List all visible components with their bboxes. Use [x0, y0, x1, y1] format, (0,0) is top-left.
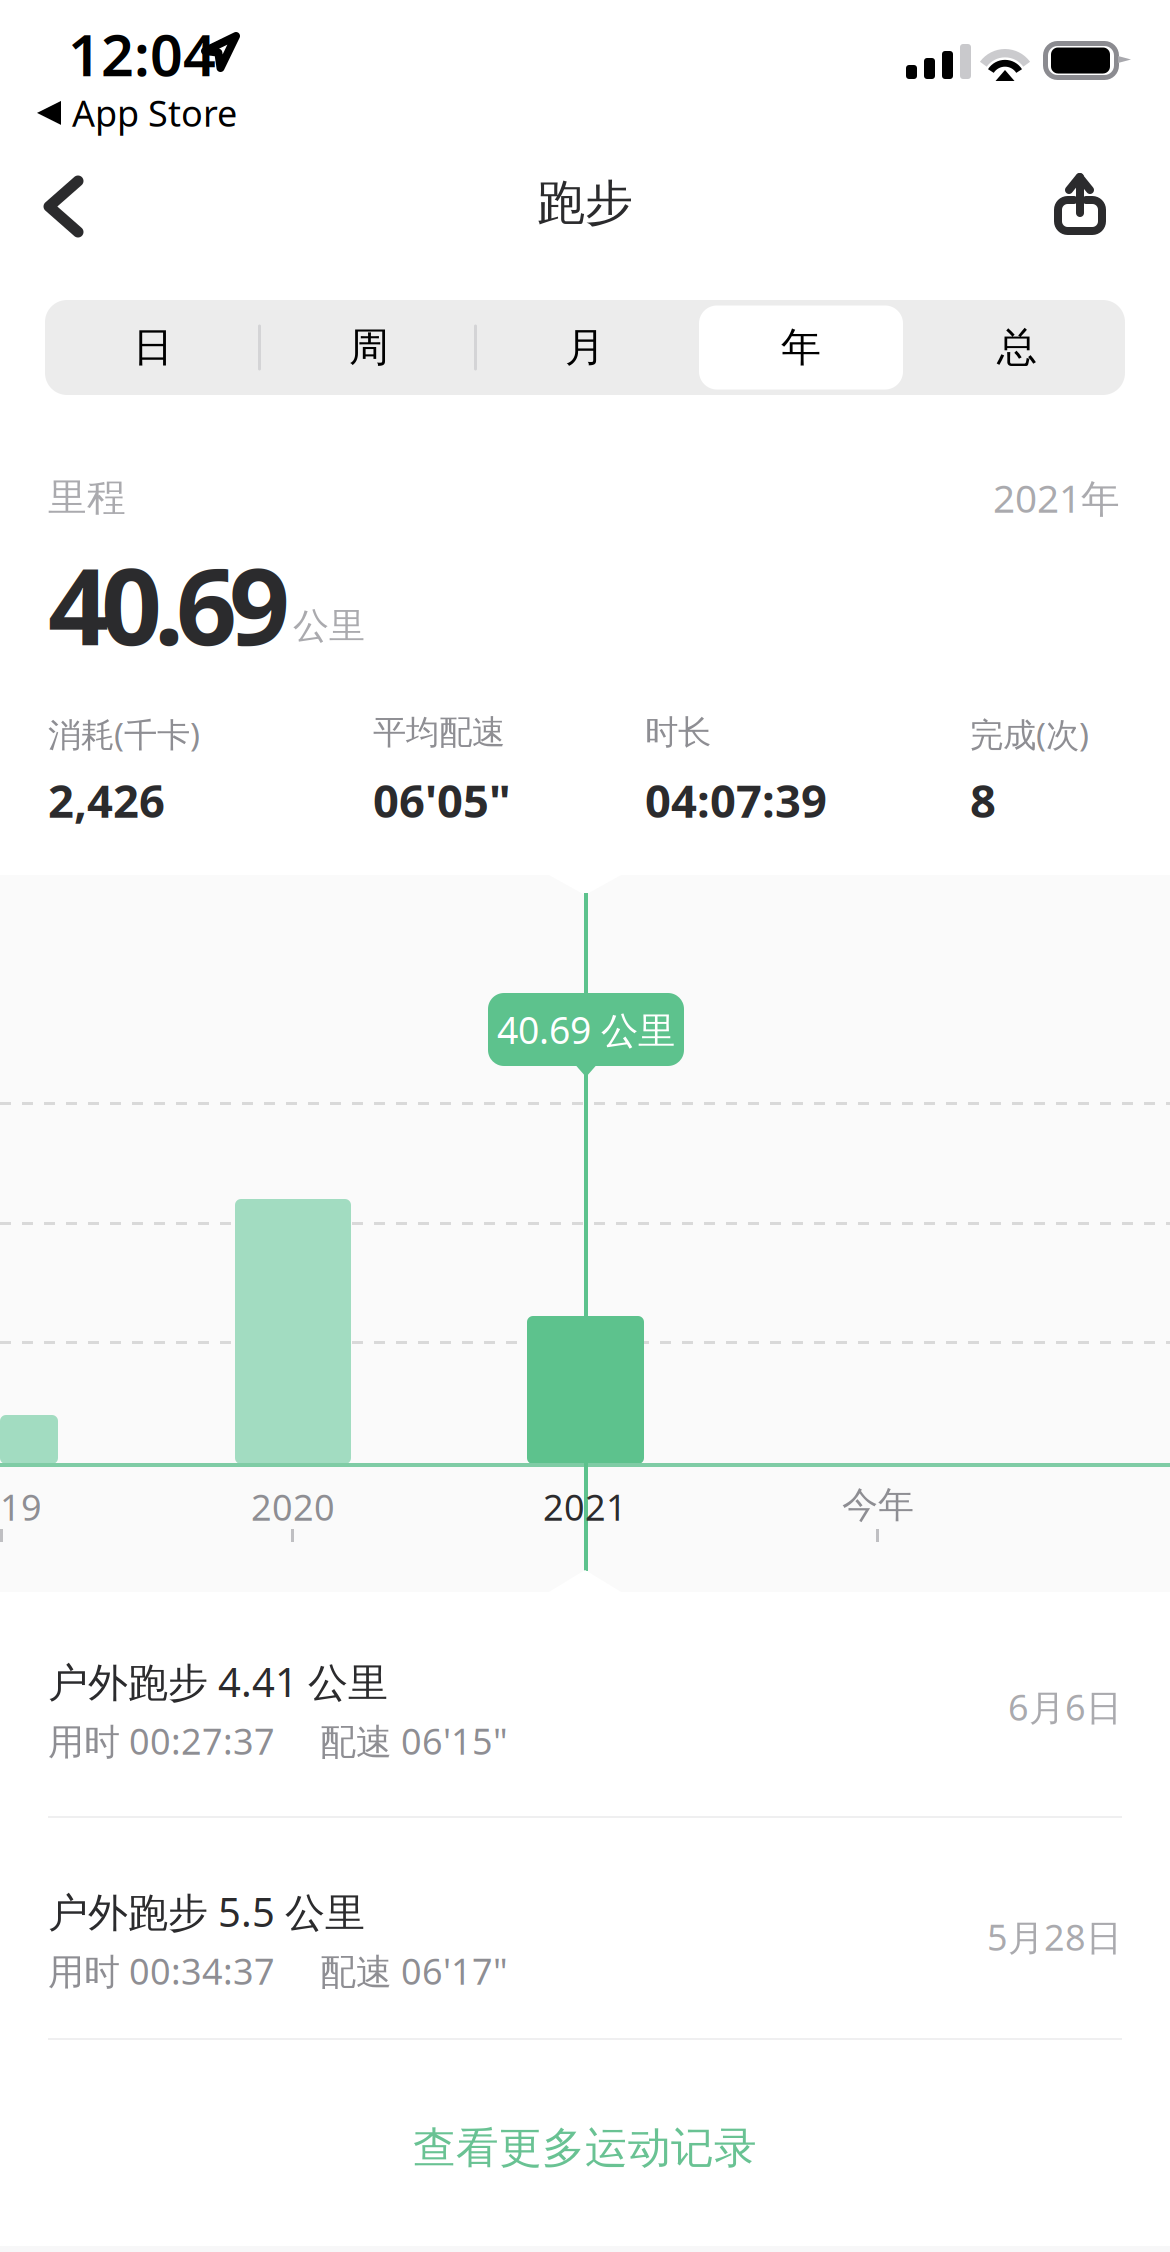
staticText: 年: [781, 323, 821, 372]
button[interactable]: 总: [909, 300, 1125, 395]
staticText: 今年: [842, 1483, 914, 1527]
button[interactable]: 户外跑步 4.41 公里: [0, 1639, 1170, 1789]
button[interactable]: 户外跑步 5.5 公里: [0, 1869, 1170, 2019]
button[interactable]: Share: [1010, 150, 1126, 256]
button[interactable]: 周: [261, 300, 477, 395]
staticText: 户外跑步 5.5 公里: [48, 1885, 365, 1938]
staticText: 12:04: [68, 16, 216, 92]
staticText: 8: [970, 770, 996, 830]
staticText: 查看更多运动记录: [413, 2122, 757, 2174]
staticText: 日: [133, 323, 173, 372]
staticText: 消耗(千卡): [48, 712, 200, 756]
staticText: 用时 00:34:37 配速 06'17": [48, 1947, 508, 1995]
staticText: 户外跑步 4.41 公里: [48, 1655, 388, 1708]
staticText: 5月28日: [987, 1913, 1122, 1961]
staticText: 2020: [251, 1483, 335, 1531]
staticText: 用时 00:27:37 配速 06'15": [48, 1717, 508, 1765]
button[interactable]: 年: [693, 300, 909, 395]
staticText: App Store: [72, 89, 237, 137]
staticText: 2021年: [993, 472, 1120, 523]
staticText: 跑步: [537, 173, 633, 232]
staticText: 2019: [0, 1483, 42, 1531]
staticText: 平均配速: [373, 712, 505, 753]
staticText: 完成(次): [970, 712, 1089, 756]
staticText: 40.69 公里: [497, 1005, 675, 1054]
button[interactable]: 月: [477, 300, 693, 395]
button[interactable]: App Store: [37, 80, 251, 146]
staticText: 里程: [48, 474, 126, 521]
button[interactable]: 日: [45, 300, 261, 395]
staticText: 06'05": [373, 770, 511, 830]
staticText: 2,426: [48, 770, 165, 830]
staticText: 40.69: [48, 533, 290, 675]
button[interactable]: 查看更多运动记录: [0, 2092, 1170, 2204]
staticText: 04:07:39: [645, 770, 827, 830]
staticText: 月: [565, 323, 605, 372]
staticText: 6月6日: [1008, 1683, 1122, 1731]
staticText: 周: [349, 323, 389, 372]
staticText: 2021: [543, 1483, 627, 1531]
button[interactable]: Back: [0, 150, 128, 256]
staticText: 公里: [293, 604, 365, 648]
staticText: 总: [997, 323, 1037, 372]
staticText: 时长: [645, 712, 711, 753]
